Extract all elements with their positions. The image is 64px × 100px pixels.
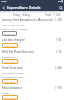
staticText: Meal allowance <box>2 86 23 90</box>
button[interactable]: PENDING <box>2 31 17 36</box>
staticText: Expenditure Details <box>7 5 41 10</box>
staticText: ₹ 640 <box>55 66 62 70</box>
staticText: VIEW BILL <box>4 80 16 83</box>
staticText: VIEW BILL <box>4 96 16 99</box>
staticText: Total ₹ 1,250 <box>45 13 61 17</box>
button[interactable]: VIEW BILL <box>2 59 18 64</box>
staticText: Paid in cash at counter <box>2 27 28 30</box>
staticText: Dinner <box>2 91 10 94</box>
staticText: ₹ 250 <box>55 18 62 22</box>
button[interactable]: Cab fare charged <box>0 37 64 49</box>
staticText: Today, 14 Aug <box>13 13 30 17</box>
staticText: Hotel Suite stay <box>2 66 23 70</box>
staticText: Two nights · Deluxe <box>2 71 24 74</box>
button[interactable]: Meal allowance <box>0 85 64 100</box>
staticText: PENDING <box>4 32 15 35</box>
staticText: Journey from Bengaluru to Mysuru toll <box>2 18 53 22</box>
staticText: Breakfast included <box>2 75 23 78</box>
staticText: Cab fare charged <box>2 38 25 42</box>
staticText: 4G ▮ <box>58 0 63 3</box>
button[interactable]: VIEW BILL <box>2 43 18 48</box>
button[interactable]: Journey from Bengaluru to Mysuru toll <box>0 17 64 37</box>
staticText: NH4 Toll Plaza Electronic <box>2 50 35 54</box>
button[interactable]: Hotel Suite stay <box>0 65 64 85</box>
button[interactable]: Today, 14 Aug <box>0 13 64 17</box>
button[interactable]: VIEW BILL <box>2 95 18 100</box>
button[interactable]: Back <box>0 4 7 11</box>
staticText: VIEW BILL <box>4 44 16 47</box>
staticText: ₹ 90 <box>56 38 62 42</box>
button[interactable]: VIEW BILL <box>2 79 18 84</box>
staticText: 10:04 <box>1 0 7 3</box>
staticText: ₹ 195 <box>55 86 62 90</box>
staticText: ₹ 75 <box>56 50 62 54</box>
staticText: VIEW BILL <box>4 60 16 63</box>
button[interactable]: Search <box>57 4 64 11</box>
staticText: Receipt 7781 <box>2 55 17 58</box>
staticText: Trip ID 882146 · Cab <box>2 23 25 26</box>
button[interactable]: NH4 Toll Plaza Electronic <box>0 49 64 65</box>
